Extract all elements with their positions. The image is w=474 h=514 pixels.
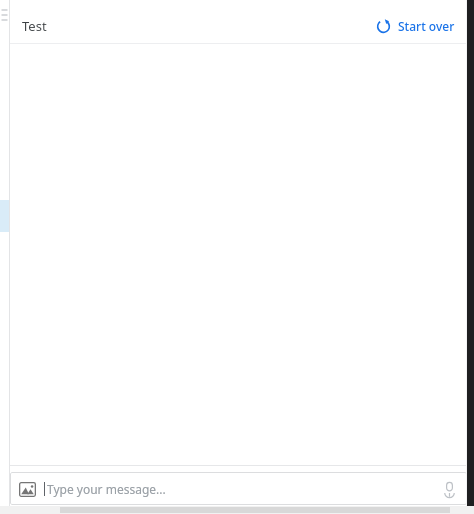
button[interactable]: Start over [370,14,461,38]
staticText: Test [22,17,47,35]
button[interactable]: Attach image [17,479,37,499]
button[interactable]: Voice input [437,477,461,501]
other: Start over [376,19,391,34]
button[interactable]: Attach image [10,472,467,505]
staticText: Type your message... [47,481,166,497]
staticText: Start over [398,18,455,34]
